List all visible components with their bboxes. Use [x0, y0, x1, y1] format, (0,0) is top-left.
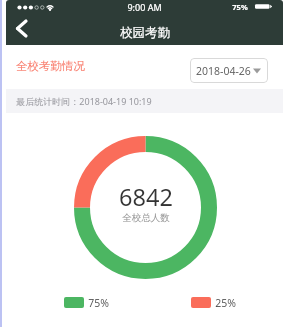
staticText: 75%	[232, 2, 248, 12]
staticText: 6842	[119, 181, 173, 207]
staticText: 全校考勤情况	[16, 59, 85, 73]
staticText: 2018-04-26	[196, 64, 251, 78]
staticText: 9:00 AM	[127, 1, 162, 13]
button[interactable]	[12, 15, 48, 45]
staticText: 校园考勤	[120, 25, 170, 41]
button[interactable]: 2018-04-26	[190, 58, 268, 83]
staticText: 75%	[88, 296, 109, 309]
staticText: 全校总人数	[122, 212, 170, 224]
staticText: 最后统计时间：2018-04-19 10:19	[16, 95, 152, 107]
staticText: 25%	[215, 296, 236, 309]
